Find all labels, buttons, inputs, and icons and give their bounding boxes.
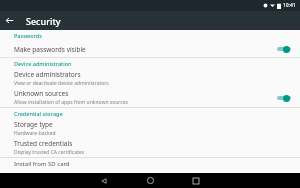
button[interactable]: Device administrators	[0, 69, 300, 88]
button[interactable]: Trusted credentials	[0, 138, 300, 157]
staticText: Display trusted CA certificates	[14, 149, 84, 156]
staticText: Hardware-backed	[14, 130, 56, 137]
button[interactable]: Make passwords visible	[0, 41, 300, 57]
button[interactable]: Home	[127, 173, 173, 188]
staticText: Make passwords visible	[14, 45, 86, 54]
staticText: Install from SD card	[14, 160, 70, 168]
staticText: Trusted credentials	[14, 139, 73, 148]
staticText: 10:41	[283, 2, 296, 9]
button[interactable]: Back	[0, 11, 19, 30]
button[interactable]: Install from SD card	[0, 158, 300, 168]
staticText: Security	[26, 15, 61, 27]
staticText: Device administrators	[14, 70, 81, 79]
button[interactable]: Back	[81, 173, 127, 188]
button[interactable]: Storage type	[0, 119, 300, 138]
staticText: Passwords	[14, 32, 42, 39]
button[interactable]: Unknown sources	[0, 88, 300, 107]
staticText: Allow installation of apps from unknown …	[14, 99, 128, 106]
button[interactable]: Toggle	[276, 44, 292, 54]
staticText: Storage type	[14, 120, 53, 129]
staticText: View or deactivate device administrators	[14, 80, 109, 87]
staticText: Credential storage	[14, 110, 63, 117]
button[interactable]: Toggle	[276, 93, 292, 103]
button[interactable]: Recent apps	[173, 173, 219, 188]
staticText: Unknown sources	[14, 89, 69, 98]
staticText: Device administration	[14, 60, 72, 67]
